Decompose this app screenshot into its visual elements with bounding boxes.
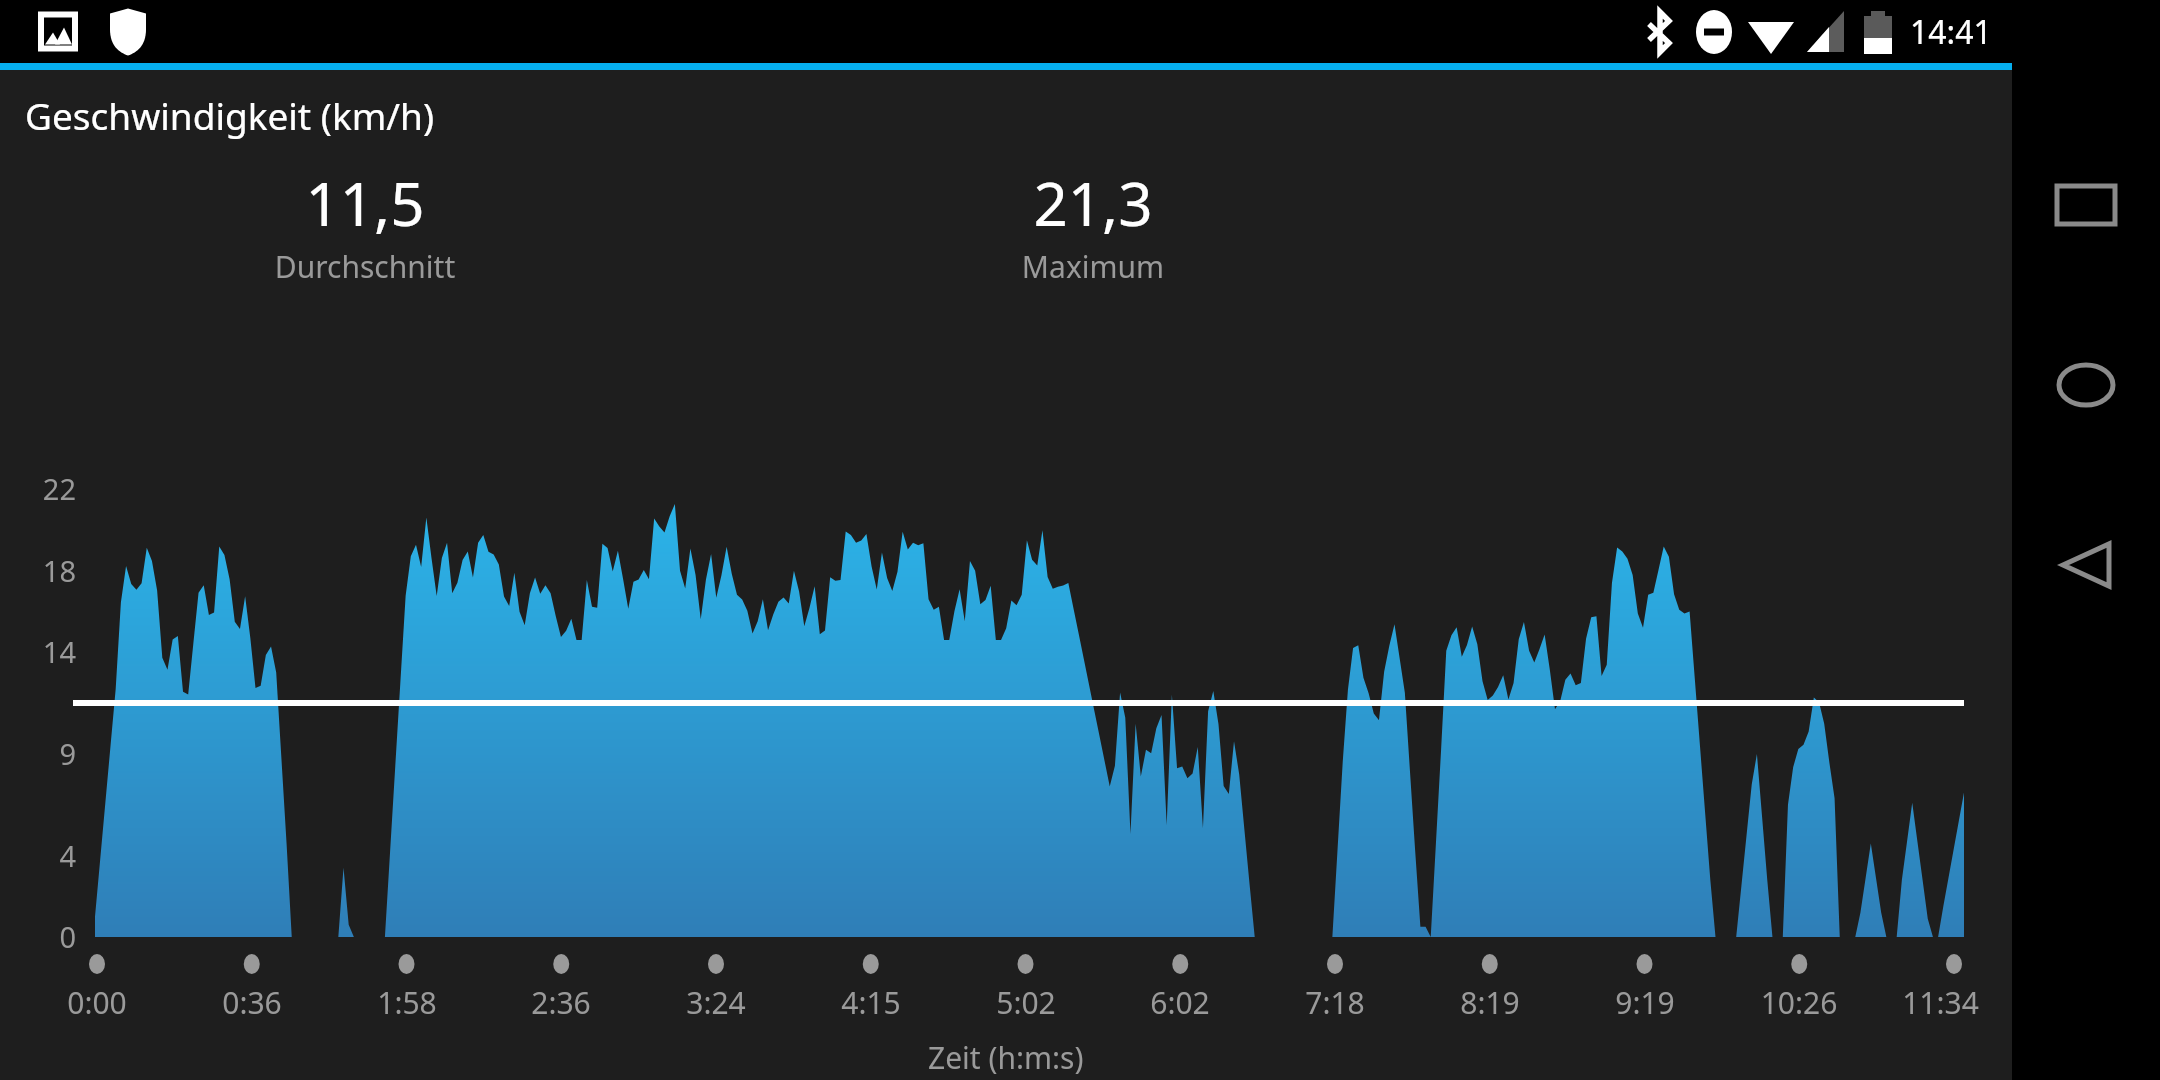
staticText: 10:26 (1714, 982, 1884, 1023)
staticText: 5:02 (941, 982, 1111, 1023)
staticText: 4:15 (786, 982, 956, 1023)
staticText: 6:02 (1095, 982, 1265, 1023)
staticText: Durchschnitt (250, 246, 480, 287)
staticText: 21,3 (978, 162, 1208, 244)
button[interactable]: Home (2026, 325, 2146, 445)
staticText: Geschwindigkeit (km/h) (25, 90, 435, 140)
staticText: 11,5 (250, 162, 480, 244)
staticText: 1:58 (322, 982, 492, 1023)
staticText: 2:36 (476, 982, 646, 1023)
staticText: 4 (0, 836, 76, 875)
staticText: 0:00 (12, 982, 182, 1023)
staticText: 9 (0, 734, 76, 773)
button[interactable]: 11,5 (250, 162, 480, 287)
staticText: 22 (0, 469, 76, 508)
button[interactable]: 21,3 (978, 162, 1208, 287)
staticText: Maximum (978, 246, 1208, 287)
staticText: 0:36 (167, 982, 337, 1023)
button[interactable]: Recents (2026, 145, 2146, 265)
staticText: 3:24 (631, 982, 801, 1023)
staticText: 7:18 (1250, 982, 1420, 1023)
staticText: 18 (0, 551, 76, 590)
staticText: 11:34 (1869, 982, 2012, 1023)
staticText: Zeit (h:m:s) (928, 1037, 1084, 1078)
button[interactable]: Back (2026, 505, 2146, 625)
staticText: 0 (0, 917, 76, 956)
staticText: 14:41 (1910, 10, 1992, 54)
staticText: 14 (0, 632, 76, 671)
staticText: 8:19 (1405, 982, 1575, 1023)
staticText: 9:19 (1560, 982, 1730, 1023)
